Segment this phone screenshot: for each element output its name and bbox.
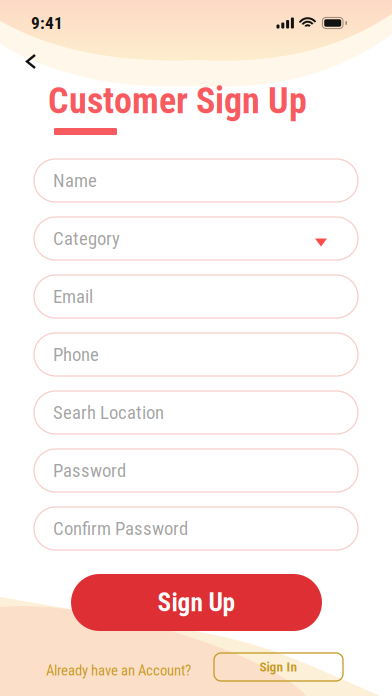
staticText: Email xyxy=(53,286,93,307)
button[interactable]: Name xyxy=(34,159,358,202)
staticText: Customer Sign Up xyxy=(48,80,307,122)
button[interactable]: Email xyxy=(34,275,358,318)
button[interactable]: Searh Location xyxy=(34,391,358,434)
staticText: Searh Location xyxy=(53,402,164,423)
staticText: Name xyxy=(53,170,97,191)
staticText: Already have an Account? xyxy=(46,662,191,679)
staticText: 9:41 xyxy=(31,13,63,33)
button[interactable]: Sign Up xyxy=(71,574,322,631)
staticText: Phone xyxy=(53,344,99,365)
button[interactable]: Sign In xyxy=(214,653,343,681)
staticText: Category xyxy=(53,228,120,249)
button[interactable]: Confirm Password xyxy=(34,507,358,550)
button[interactable]: Back xyxy=(16,44,46,79)
button[interactable]: Category xyxy=(34,217,358,260)
staticText: Sign In xyxy=(259,659,297,675)
button[interactable]: Password xyxy=(34,449,358,492)
button[interactable]: Phone xyxy=(34,333,358,376)
staticText: Sign Up xyxy=(157,588,235,617)
staticText: Confirm Password xyxy=(53,518,188,539)
staticText: Password xyxy=(53,460,126,481)
